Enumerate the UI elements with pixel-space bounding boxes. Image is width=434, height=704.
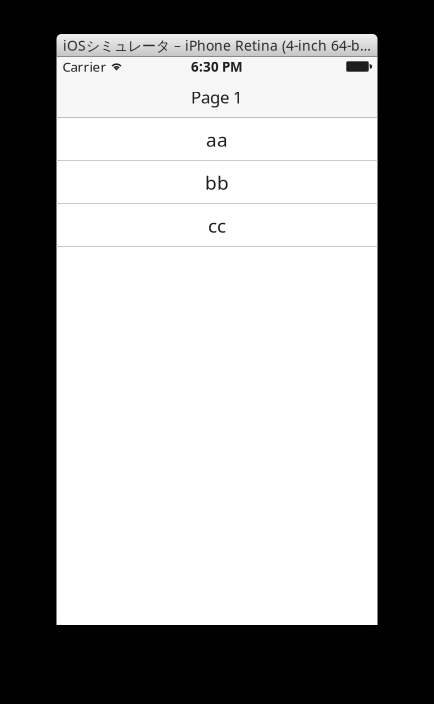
button[interactable]: aa bbox=[56, 118, 377, 161]
staticText: aa bbox=[206, 127, 228, 152]
staticText: Carrier bbox=[62, 58, 106, 75]
button[interactable]: bb bbox=[56, 161, 377, 204]
staticText: 6:30 PM bbox=[191, 57, 243, 76]
staticText: Page 1 bbox=[191, 86, 243, 108]
staticText: cc bbox=[208, 213, 226, 238]
button[interactable]: cc bbox=[56, 204, 377, 247]
staticText: iOSシミュレータ – iPhone Retina (4-inch 64-b… bbox=[63, 36, 371, 55]
staticText: bb bbox=[205, 170, 229, 195]
